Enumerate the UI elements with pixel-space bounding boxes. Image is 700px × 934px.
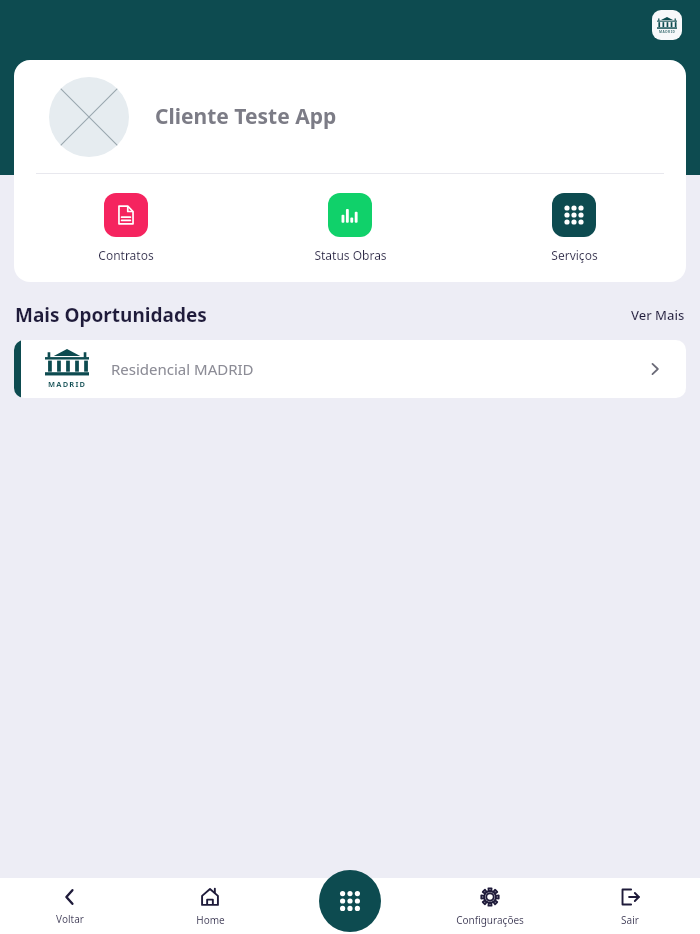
button[interactable]: MADRID [14, 340, 686, 398]
button[interactable]: Contratos [14, 193, 238, 263]
staticText: Contratos [98, 247, 154, 263]
button[interactable]: Voltar [0, 878, 140, 934]
button[interactable]: Cliente Teste App [14, 60, 686, 173]
staticText: Serviços [551, 247, 598, 263]
staticText: MADRID [659, 30, 676, 34]
staticText: Home [196, 913, 225, 927]
staticText: Sair [621, 913, 639, 927]
staticText: Cliente Teste App [155, 102, 337, 131]
button[interactable]: Status Obras [238, 193, 462, 263]
staticText: Voltar [56, 912, 84, 926]
staticText: Mais Oportunidades [15, 302, 207, 328]
staticText: Configurações [456, 913, 524, 927]
staticText: Ver Mais [631, 306, 685, 324]
staticText: Status Obras [314, 247, 387, 263]
staticText: MADRID [48, 379, 87, 389]
button[interactable]: Serviços [462, 193, 686, 263]
button[interactable]: Ver Mais [631, 306, 685, 324]
button[interactable]: Home [140, 878, 280, 934]
button[interactable]: Configurações [420, 878, 560, 934]
staticText: Residencial MADRID [111, 359, 254, 379]
button[interactable]: Sair [560, 878, 700, 934]
button[interactable]: Madrid logo [652, 10, 682, 40]
button[interactable]: Menu [319, 870, 381, 932]
